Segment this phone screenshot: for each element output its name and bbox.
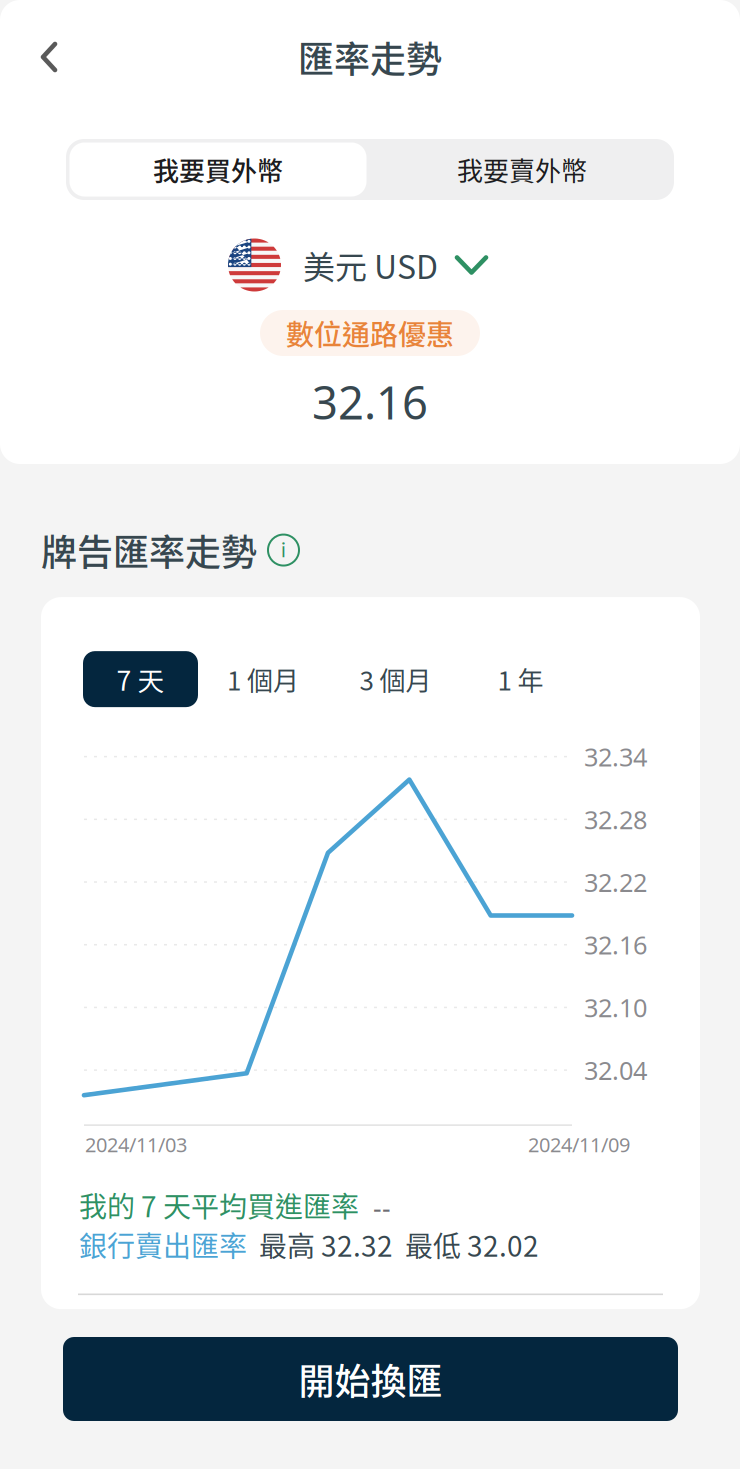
staticText: 我的 7 天平均買進匯率 bbox=[79, 1185, 359, 1225]
staticText: 數位通路優惠 bbox=[286, 313, 454, 353]
button[interactable]: 3 個月 bbox=[328, 651, 463, 707]
staticText: 32.16 bbox=[312, 372, 428, 432]
button[interactable]: 開始換匯 bbox=[63, 1337, 678, 1421]
button[interactable]: 1 年 bbox=[463, 651, 578, 707]
button[interactable]: 7 天 bbox=[83, 651, 198, 707]
staticText: 開始換匯 bbox=[298, 1353, 442, 1405]
staticText: 匯率走勢 bbox=[298, 31, 442, 83]
staticText: 7 天 bbox=[116, 660, 164, 698]
staticText: 我要買外幣 bbox=[153, 151, 283, 188]
staticText: i bbox=[281, 538, 286, 562]
staticText: 最高 32.32 最低 32.02 bbox=[247, 1224, 539, 1265]
staticText: 我要賣外幣 bbox=[457, 151, 587, 188]
staticText: 美元 USD bbox=[303, 242, 438, 288]
staticText: 1 年 bbox=[497, 660, 543, 698]
staticText: 32.22 bbox=[584, 865, 647, 899]
staticText: 3 個月 bbox=[359, 660, 431, 698]
staticText: 牌告匯率走勢 bbox=[41, 524, 257, 576]
staticText: 1 個月 bbox=[227, 660, 299, 698]
staticText: 32.16 bbox=[584, 928, 647, 962]
staticText: 32.34 bbox=[584, 740, 647, 773]
staticText: 銀行賣出匯率 bbox=[79, 1224, 247, 1265]
staticText: 32.10 bbox=[584, 991, 647, 1024]
button[interactable]: Back bbox=[22, 30, 76, 84]
button[interactable]: Information bbox=[268, 535, 299, 566]
staticText: 32.28 bbox=[584, 803, 647, 836]
staticText: -- bbox=[359, 1190, 391, 1225]
button[interactable]: 我要賣外幣 bbox=[370, 139, 674, 200]
button[interactable]: 1 個月 bbox=[198, 651, 328, 707]
staticText: 32.04 bbox=[584, 1053, 647, 1087]
staticText: 2024/11/09 bbox=[528, 1131, 630, 1158]
button[interactable]: 我要買外幣 bbox=[66, 139, 370, 200]
staticText: 2024/11/03 bbox=[85, 1131, 187, 1158]
button[interactable]: 美元 USD bbox=[228, 236, 486, 294]
